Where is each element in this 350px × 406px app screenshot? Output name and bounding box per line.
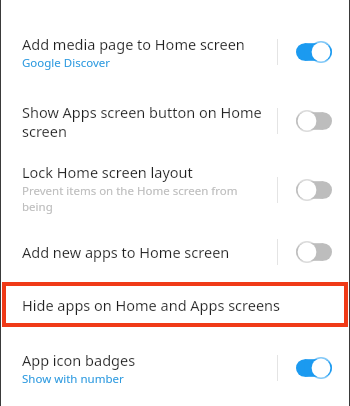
button[interactable]: Lock Home screen layout [0,162,350,218]
staticText: Lock Home screen layout [22,162,193,182]
button[interactable]: Switch off [296,110,332,132]
button[interactable]: Switch on [278,27,350,77]
staticText: Add media page to Home screen [22,34,245,54]
button[interactable]: Switch on [278,344,350,392]
staticText: App icon badges [22,350,136,370]
button[interactable]: Switch off [278,162,350,218]
staticText: Show Apps screen button on Home screen [22,102,262,141]
button[interactable]: App icon badges [0,344,350,392]
staticText: Show with number [22,371,124,387]
staticText: Add new apps to Home screen [22,242,230,262]
button[interactable]: Switch off [278,235,350,269]
button[interactable]: Show Apps screen button on Home screen [0,97,350,145]
button[interactable]: Switch off [296,241,332,263]
button[interactable]: Switch on [296,357,332,379]
button[interactable]: Switch off [296,179,332,201]
button[interactable]: Switch on [296,41,332,63]
button[interactable]: Hide apps on Home and Apps screens [2,282,348,327]
button[interactable]: Add new apps to Home screen [0,235,350,269]
staticText: Google Discover [22,55,110,71]
staticText: Prevent items on the Home screen from be… [22,183,269,218]
button[interactable]: Add media page to Home screen [0,27,350,77]
staticText: Hide apps on Home and Apps screens [22,295,281,315]
button[interactable]: Switch off [278,97,350,145]
